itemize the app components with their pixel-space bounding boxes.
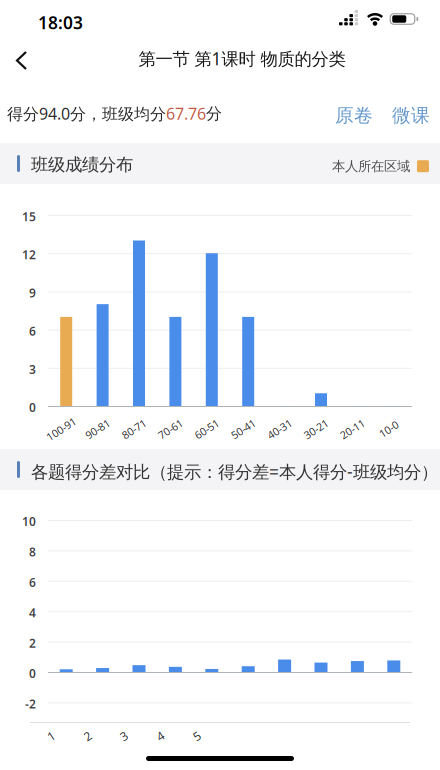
staticText: 50-41 bbox=[230, 422, 257, 436]
staticText: 20-11 bbox=[339, 422, 366, 436]
staticText: 4 bbox=[29, 605, 36, 621]
staticText: 15 bbox=[22, 208, 36, 224]
button[interactable]: 原卷 bbox=[327, 95, 381, 136]
staticText: 0 bbox=[29, 665, 36, 681]
staticText: 3 bbox=[29, 361, 36, 377]
staticText: 0 bbox=[29, 399, 36, 415]
staticText: 1 bbox=[48, 728, 55, 744]
staticText: 5 bbox=[193, 728, 200, 744]
staticText: 第一节 第1课时 物质的分类 bbox=[138, 47, 345, 70]
staticText: 得分94.0分，班级均分 bbox=[7, 103, 166, 124]
staticText: 30-21 bbox=[302, 422, 329, 436]
button[interactable]: Back bbox=[12, 45, 60, 91]
staticText: 67.76 bbox=[166, 103, 206, 124]
staticText: 6 bbox=[29, 323, 36, 339]
staticText: 18:03 bbox=[38, 11, 83, 34]
staticText: 6 bbox=[29, 574, 36, 590]
staticText: 班级成绩分布 bbox=[31, 154, 133, 175]
staticText: 分 bbox=[206, 104, 222, 123]
button[interactable]: 微课 bbox=[384, 95, 438, 136]
staticText: 40-31 bbox=[266, 422, 293, 436]
staticText: 2 bbox=[84, 728, 91, 744]
staticText: 10 bbox=[22, 513, 36, 529]
staticText: 原卷 bbox=[335, 104, 373, 127]
staticText: 8 bbox=[29, 544, 36, 560]
staticText: 微课 bbox=[392, 104, 430, 127]
staticText: 12 bbox=[22, 247, 36, 263]
staticText: 9 bbox=[29, 285, 36, 301]
staticText: 4 bbox=[157, 728, 164, 744]
staticText: 本人所在区域 bbox=[332, 158, 410, 174]
staticText: 各题得分差对比（提示：得分差=本人得分-班级均分） bbox=[31, 460, 438, 483]
staticText: 70-61 bbox=[157, 422, 184, 436]
staticText: 60-51 bbox=[193, 422, 220, 436]
staticText: 80-71 bbox=[120, 422, 147, 436]
staticText: -2 bbox=[25, 696, 36, 712]
staticText: 10-0 bbox=[378, 422, 399, 436]
staticText: 2 bbox=[29, 635, 36, 651]
staticText: 100-91 bbox=[45, 422, 78, 436]
staticText: 3 bbox=[120, 728, 127, 744]
staticText: 90-81 bbox=[84, 422, 111, 436]
